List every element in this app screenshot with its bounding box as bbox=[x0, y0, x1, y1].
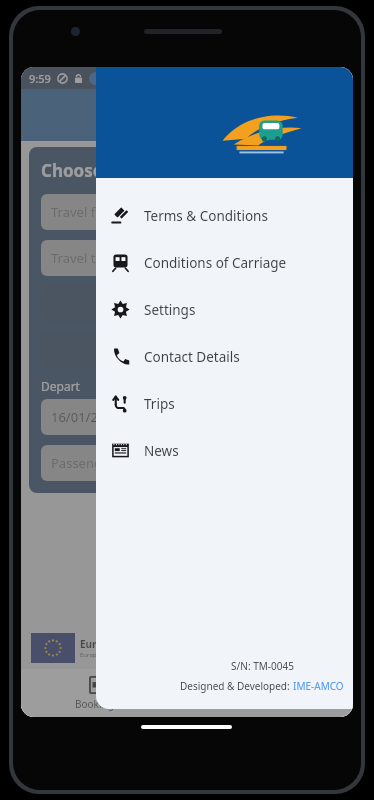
staticText: European Union bbox=[80, 637, 160, 651]
button[interactable]: Contact Details bbox=[96, 333, 353, 380]
staticText: Conditions of Carriage bbox=[144, 254, 287, 272]
button[interactable]: 16/01/2024 bbox=[41, 399, 333, 435]
staticText: Settings bbox=[144, 301, 196, 319]
staticText: European Regional Fund bbox=[80, 651, 150, 659]
button[interactable]: Settings bbox=[96, 286, 353, 333]
button[interactable]: More bbox=[264, 672, 309, 715]
staticText: Designed & Developed: bbox=[180, 679, 293, 693]
staticText: Travel from bbox=[51, 203, 121, 221]
staticText: Tickets bbox=[178, 697, 211, 711]
staticText: Booking bbox=[75, 697, 114, 711]
button[interactable]: Travel to bbox=[41, 240, 333, 276]
button[interactable]: Travel from bbox=[41, 194, 333, 230]
staticText: Open Return bbox=[148, 341, 227, 359]
staticText: Trips bbox=[144, 395, 175, 413]
staticText: Travel to bbox=[51, 249, 104, 267]
staticText: Terms & Conditions bbox=[144, 207, 268, 225]
button[interactable]: Terms & Conditions bbox=[96, 192, 353, 239]
button[interactable]: Conditions of Carriage bbox=[96, 239, 353, 286]
staticText: S/N: TM-0045 bbox=[231, 659, 294, 673]
button[interactable]: News bbox=[96, 427, 353, 474]
button[interactable]: Trips bbox=[96, 380, 353, 427]
staticText: 16/01/2024 bbox=[51, 408, 121, 426]
staticText: News bbox=[144, 442, 179, 460]
button[interactable]: Booking bbox=[65, 672, 124, 715]
button[interactable]: Passengers bbox=[41, 445, 333, 481]
button[interactable]: IME-AMCO bbox=[293, 679, 344, 693]
staticText: 9:59 bbox=[29, 71, 51, 86]
staticText: Passengers bbox=[51, 454, 121, 472]
button[interactable]: Tickets bbox=[168, 672, 221, 715]
staticText: More bbox=[274, 697, 299, 711]
staticText: Depart bbox=[41, 378, 80, 394]
staticText: Contact Details bbox=[144, 348, 240, 366]
staticText: Choose Your Trip bbox=[41, 159, 184, 182]
